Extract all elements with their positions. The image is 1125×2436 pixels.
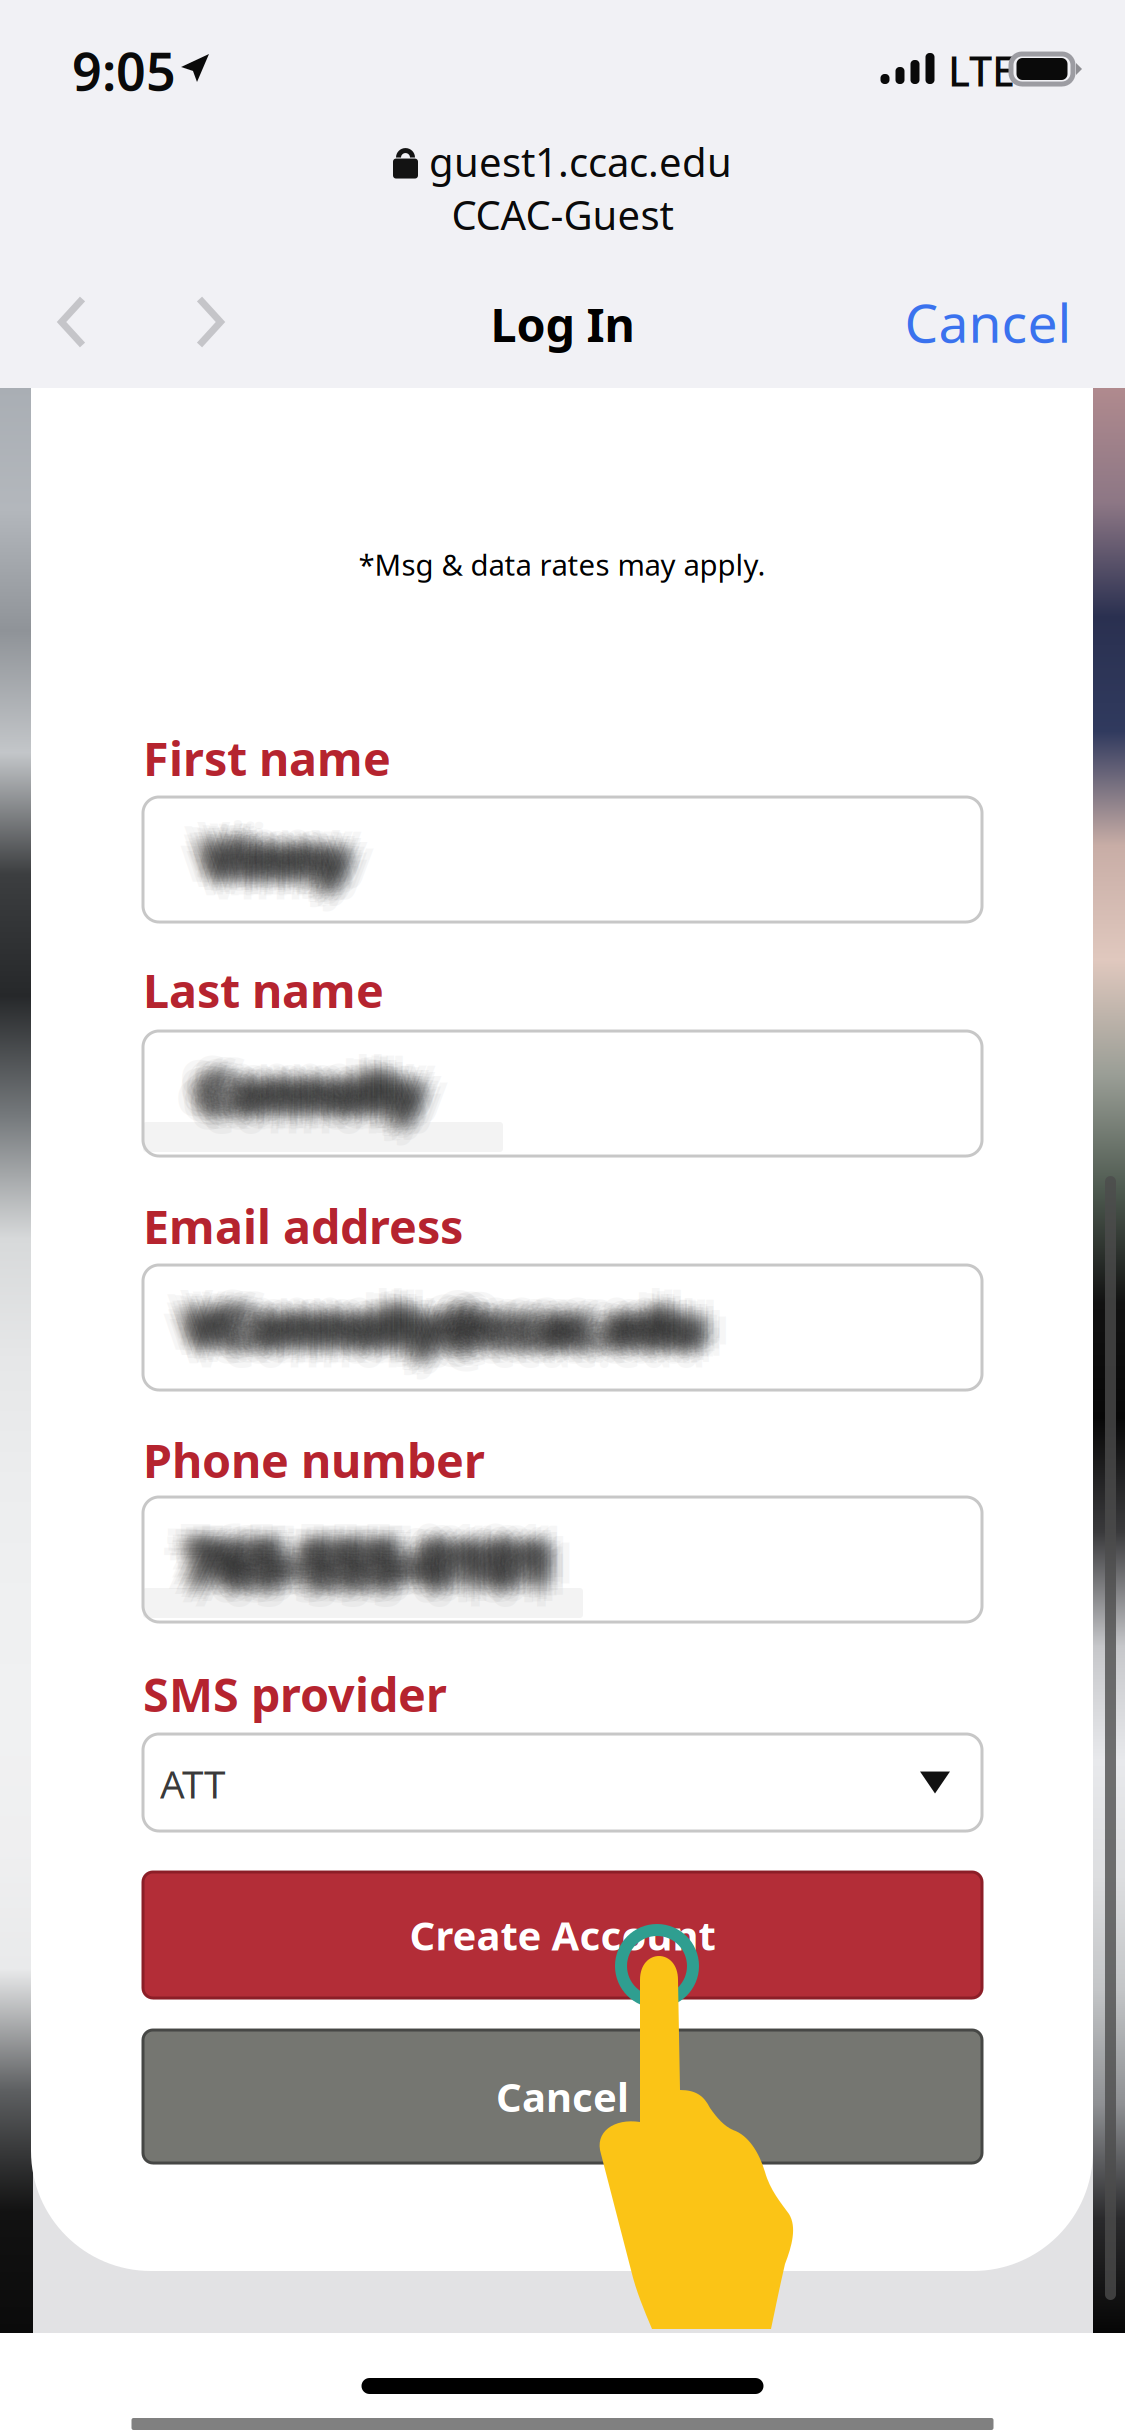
staticText: VConnolly@ccac.edu: [192, 1296, 708, 1363]
button[interactable]: Create Account: [143, 1872, 982, 1998]
staticText: guest1.ccac.edu: [429, 135, 732, 188]
staticText: 765-555-0101: [186, 1531, 552, 1607]
staticText: Vinny: [196, 818, 339, 886]
staticText: Connolly: [196, 1046, 418, 1114]
staticText: Vinny: [202, 820, 345, 888]
staticText: VConnolly@ccac.edu: [193, 1274, 709, 1341]
staticText: VConnolly@ccac.edu: [186, 1286, 702, 1353]
staticText: Connolly: [187, 1066, 409, 1134]
staticText: VConnolly@ccac.edu: [198, 1299, 714, 1366]
staticText: Connolly: [201, 1067, 423, 1134]
staticText: VConnolly@ccac.edu: [197, 1309, 713, 1376]
staticText: 765-555-0101: [179, 1531, 545, 1607]
staticText: VConnolly@ccac.edu: [191, 1307, 707, 1374]
staticText: VConnolly@ccac.edu: [207, 1303, 723, 1370]
staticText: Connolly: [199, 1071, 421, 1138]
staticText: Connolly: [217, 1055, 439, 1123]
staticText: Vinny: [224, 827, 367, 895]
staticText: 765-555-0101: [171, 1516, 537, 1592]
staticText: Connolly: [192, 1039, 414, 1106]
staticText: Connolly: [207, 1045, 429, 1112]
staticText: 765-555-0101: [200, 1517, 566, 1593]
staticText: VConnolly@ccac.edu: [163, 1296, 679, 1364]
button[interactable]: Cancel: [888, 274, 1088, 370]
staticText: Vinny: [207, 846, 350, 913]
staticText: VConnolly@ccac.edu: [192, 1285, 708, 1352]
staticText: VConnolly@ccac.edu: [189, 1288, 705, 1355]
staticText: 765-555-0101: [180, 1515, 546, 1591]
staticText: Connolly: [188, 1063, 410, 1130]
staticText: Create Account: [409, 1908, 715, 1961]
staticText: Vinny: [215, 823, 358, 890]
staticText: Vinny: [213, 814, 356, 882]
staticText: Vinny: [197, 811, 340, 878]
staticText: 765-555-0101: [198, 1527, 564, 1603]
staticText: 765-555-0101: [183, 1516, 549, 1592]
staticText: Vinny: [206, 829, 349, 896]
staticText: Connolly: [214, 1064, 436, 1131]
staticText: VConnolly@ccac.edu: [189, 1279, 705, 1346]
staticText: VConnolly@ccac.edu: [185, 1288, 701, 1356]
staticText: 765-555-0101: [174, 1519, 540, 1595]
staticText: VConnolly@ccac.edu: [187, 1305, 703, 1372]
staticText: 765-555-0101: [181, 1519, 547, 1595]
staticText: Vinny: [205, 824, 348, 891]
staticText: Connolly: [188, 1057, 410, 1124]
staticText: VConnolly@ccac.edu: [183, 1297, 699, 1364]
staticText: VConnolly@ccac.edu: [177, 1310, 693, 1377]
staticText: 765-555-0101: [186, 1522, 552, 1598]
staticText: VConnolly@ccac.edu: [185, 1302, 701, 1369]
staticText: Connolly: [203, 1065, 425, 1132]
staticText: Connolly: [179, 1051, 401, 1119]
staticText: VConnolly@ccac.edu: [193, 1291, 709, 1358]
staticText: Vinny: [194, 842, 337, 909]
staticText: VConnolly@ccac.edu: [167, 1277, 683, 1344]
staticText: VConnolly@ccac.edu: [214, 1291, 730, 1359]
button[interactable]: Back: [17, 274, 127, 370]
staticText: VConnolly@ccac.edu: [175, 1278, 691, 1345]
staticText: 765-555-0101: [199, 1521, 565, 1597]
staticText: Connolly: [205, 1057, 427, 1124]
staticText: VConnolly@ccac.edu: [207, 1295, 723, 1363]
staticText: VConnolly@ccac.edu: [183, 1299, 699, 1367]
staticText: 765-555-0101: [197, 1531, 563, 1607]
staticText: 765-555-0101: [184, 1541, 550, 1617]
staticText: Vinny: [206, 833, 349, 900]
staticText: VConnolly@ccac.edu: [172, 1289, 688, 1356]
staticText: Connolly: [175, 1062, 397, 1130]
button[interactable]: Forward: [155, 274, 265, 370]
staticText: Vinny: [185, 824, 328, 891]
staticText: 765-555-0101: [176, 1515, 542, 1591]
staticText: VConnolly@ccac.edu: [187, 1282, 703, 1350]
staticText: VConnolly@ccac.edu: [195, 1296, 711, 1363]
staticText: VConnolly@ccac.edu: [180, 1292, 696, 1360]
staticText: Connolly: [204, 1051, 426, 1118]
staticText: VConnolly@ccac.edu: [186, 1276, 702, 1343]
staticText: Connolly: [183, 1063, 405, 1130]
staticText: Vinny: [197, 828, 340, 895]
staticText: Vinny: [219, 825, 362, 892]
staticText: Vinny: [210, 806, 353, 873]
staticText: 765-555-0101: [190, 1514, 556, 1590]
staticText: 765-555-0101: [172, 1525, 538, 1602]
staticText: Vinny: [208, 825, 351, 893]
staticText: VConnolly@ccac.edu: [175, 1300, 691, 1368]
staticText: Connolly: [197, 1059, 419, 1126]
staticText: Connolly: [205, 1040, 427, 1107]
staticText: 765-555-0101: [192, 1523, 558, 1599]
staticText: VConnolly@ccac.edu: [182, 1289, 698, 1357]
staticText: Connolly: [185, 1059, 407, 1127]
staticText: Vinny: [206, 826, 349, 893]
staticText: Connolly: [191, 1052, 413, 1120]
staticText: VConnolly@ccac.edu: [175, 1287, 691, 1354]
staticText: 765-555-0101: [189, 1546, 555, 1622]
button[interactable]: Cancel: [143, 2030, 982, 2163]
staticText: Vinny: [197, 805, 340, 872]
staticText: Vinny: [192, 819, 335, 886]
staticText: Connolly: [213, 1047, 435, 1114]
staticText: Vinny: [192, 810, 335, 877]
staticText: Vinny: [198, 815, 341, 882]
staticText: VConnolly@ccac.edu: [201, 1274, 717, 1342]
staticText: VConnolly@ccac.edu: [173, 1293, 689, 1361]
staticText: VConnolly@ccac.edu: [199, 1295, 715, 1362]
